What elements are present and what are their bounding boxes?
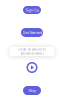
button[interactable]: Play bbox=[26, 62, 37, 73]
button[interactable]: Get Started bbox=[21, 28, 43, 37]
staticText: Create an account to bbox=[18, 48, 46, 51]
staticText: sync across devices bbox=[20, 52, 43, 55]
button[interactable]: Sign Up bbox=[23, 6, 41, 14]
staticText: Sign Up bbox=[25, 7, 38, 13]
button[interactable]: Skip bbox=[23, 86, 41, 95]
staticText: Get Started bbox=[22, 30, 41, 35]
staticText: Skip bbox=[28, 88, 35, 93]
